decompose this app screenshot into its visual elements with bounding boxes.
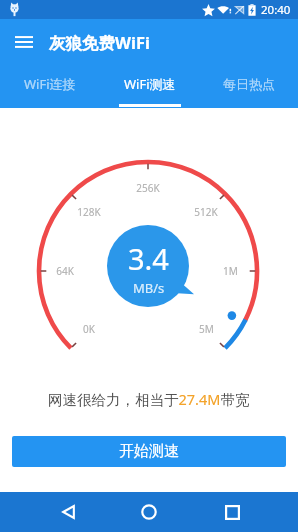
button[interactable]: 每日热点 <box>199 67 298 108</box>
button[interactable]: Back <box>45 492 91 532</box>
button[interactable]: Menu <box>5 23 43 61</box>
staticText: 512K <box>194 205 218 219</box>
button[interactable]: WiFi测速 <box>100 67 199 108</box>
staticText: 网速很给力，相当于27.4M带宽 <box>48 389 250 409</box>
button[interactable]: Recent apps <box>209 492 255 532</box>
staticText: 20:40 <box>261 2 291 18</box>
staticText: 256K <box>136 181 160 195</box>
staticText: 3.4 <box>128 239 169 278</box>
staticText: WiFi测速 <box>124 75 176 93</box>
button[interactable]: Home <box>126 492 172 532</box>
staticText: 每日热点 <box>223 76 275 92</box>
staticText: WiFi连接 <box>24 75 76 93</box>
staticText: 灰狼免费WiFi <box>49 31 150 54</box>
staticText: 64K <box>56 264 74 278</box>
button[interactable]: WiFi连接 <box>0 67 100 108</box>
staticText: 5M <box>199 322 214 336</box>
staticText: MB/s <box>133 279 165 297</box>
staticText: 1M <box>223 264 238 278</box>
button[interactable]: Speed 3.4 MB/s <box>107 225 189 307</box>
staticText: 128K <box>77 205 101 219</box>
staticText: 0K <box>83 322 95 336</box>
button[interactable]: 开始测速 <box>12 436 286 467</box>
staticText: 开始测速 <box>119 442 179 461</box>
